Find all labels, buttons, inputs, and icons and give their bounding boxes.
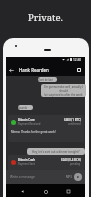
staticText: Bitcoin Cash — [18, 158, 36, 162]
staticText: 12:30 — [73, 58, 82, 62]
button[interactable]: Contact info — [74, 65, 83, 74]
staticText: Payment Received — [18, 122, 41, 126]
staticText: Payment Sent — [18, 162, 35, 166]
button[interactable]: Bitcoin Core — [8, 115, 84, 142]
staticText: I'm gonna make well, actually I should b… — [43, 85, 84, 97]
staticText: Hey, let's sort out a dinner tonight? — [32, 150, 80, 154]
button[interactable]: I'm gonna make well, actually I should b… — [41, 84, 86, 97]
button[interactable]: Back — [7, 66, 15, 74]
button[interactable]: Back — [16, 185, 29, 197]
button[interactable]: Home — [39, 185, 52, 197]
staticText: $400 (1 BTC) — [64, 118, 81, 122]
button[interactable]: Send — [74, 173, 82, 181]
staticText: Dont be late tonight — [38, 78, 57, 82]
staticText: Sounds good! — [18, 106, 33, 110]
staticText: Bitcoin Core — [18, 118, 35, 122]
button[interactable]: Hey, let's sort out a dinner tonight? — [27, 148, 85, 155]
button[interactable]: Sounds good! — [18, 105, 33, 110]
staticText: Private. — [28, 11, 63, 24]
button[interactable]: Bitcoin Cash — [8, 155, 84, 175]
staticText: $240 (0.4 BCH) — [61, 158, 81, 162]
staticText: pending — [70, 162, 81, 166]
staticText: Write a message — [10, 175, 35, 179]
button[interactable]: Dont be late tonight — [38, 77, 57, 82]
staticText: confirmed — [68, 122, 81, 126]
staticText: MP3 — [66, 175, 72, 179]
button[interactable]: Recents — [62, 185, 75, 197]
staticText: Memo: Thanks for the great work! — [11, 130, 56, 134]
staticText: Hank Rearden — [19, 67, 49, 73]
button[interactable]: Hank Rearden — [19, 66, 64, 74]
